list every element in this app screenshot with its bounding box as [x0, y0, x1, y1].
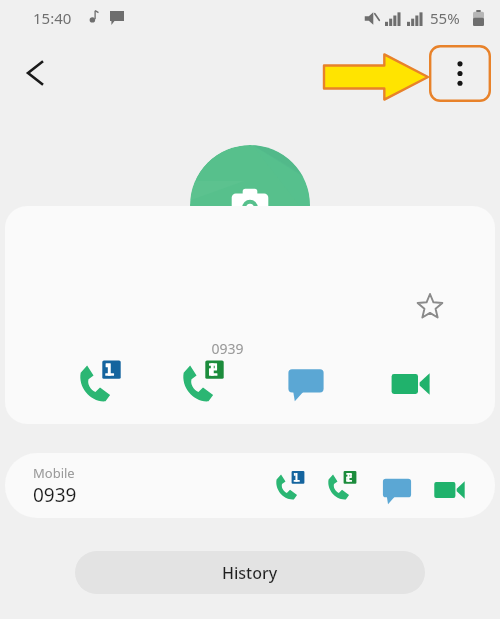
button[interactable]: Call action: [376, 468, 418, 510]
button[interactable]: More options: [429, 45, 491, 102]
staticText: 0939: [33, 482, 77, 508]
button[interactable]: Call action: [173, 352, 233, 412]
button[interactable]: Call action: [383, 357, 437, 411]
button[interactable]: Call action: [321, 465, 363, 507]
button[interactable]: Favorite: [409, 286, 451, 328]
button[interactable]: Mobile: [5, 453, 495, 518]
button[interactable]: Call action: [70, 352, 130, 412]
button[interactable]: History: [75, 551, 425, 594]
button[interactable]: Call action: [269, 465, 311, 507]
staticText: 15:40: [33, 8, 72, 28]
button[interactable]: Back: [12, 48, 62, 98]
button[interactable]: Call action: [428, 469, 470, 511]
button[interactable]: Call action: [279, 355, 333, 409]
staticText: 0939: [195, 339, 260, 358]
staticText: History: [222, 562, 278, 584]
button[interactable]: Contact photo: [190, 145, 310, 265]
staticText: Mobile: [33, 464, 75, 482]
staticText: 55%: [430, 8, 460, 28]
